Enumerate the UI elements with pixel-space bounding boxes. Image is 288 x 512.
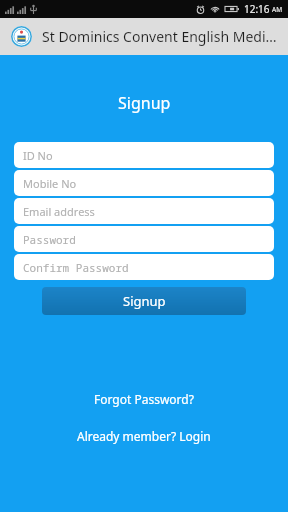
staticText: Already member? Login xyxy=(77,428,211,444)
button[interactable]: Mobile No xyxy=(14,170,274,196)
staticText: Signup xyxy=(123,292,166,310)
button[interactable]: Confirm Password xyxy=(14,254,274,280)
button[interactable]: Signup xyxy=(42,287,246,315)
button[interactable]: Forgot Password? xyxy=(84,388,204,410)
staticText: Mobile No xyxy=(23,176,77,191)
button[interactable]: ID No xyxy=(14,142,274,168)
staticText: Password xyxy=(23,232,76,247)
staticText: Signup xyxy=(118,92,171,114)
staticText: Confirm Password xyxy=(23,260,129,275)
staticText: ID No xyxy=(23,148,53,163)
staticText: Email address xyxy=(23,204,95,219)
button[interactable]: Password xyxy=(14,226,274,252)
button[interactable]: Already member? Login xyxy=(67,425,221,447)
staticText: Forgot Password? xyxy=(94,391,194,407)
staticText: St Dominics Convent English Mediu… xyxy=(42,27,280,46)
button[interactable]: Email address xyxy=(14,198,274,224)
staticText: AM xyxy=(272,5,283,14)
staticText: 12:16 xyxy=(244,2,270,16)
